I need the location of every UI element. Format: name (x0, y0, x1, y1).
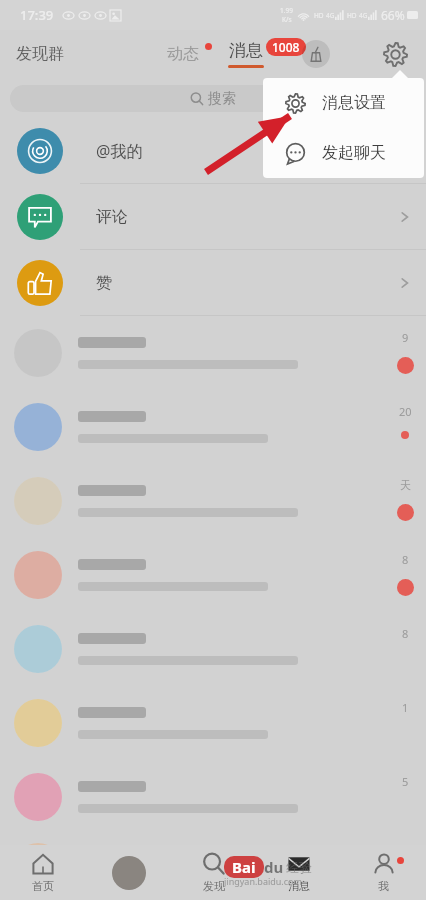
staticText: 8 (402, 552, 409, 567)
staticText: 1008 (272, 39, 300, 55)
staticText: 17:39 (20, 6, 54, 24)
button[interactable]: 消息 (228, 40, 264, 68)
staticText: jingyan.baidu.com (224, 875, 302, 887)
staticText: K/s (282, 15, 292, 24)
staticText: @我的 (96, 140, 143, 162)
staticText: 评论 (96, 207, 128, 227)
button[interactable]: 动态 (163, 40, 203, 68)
staticText: 首页 (32, 879, 54, 893)
button[interactable]: @我的 (0, 118, 426, 183)
button[interactable]: 1 (0, 686, 426, 760)
staticText: 经验 (286, 859, 312, 875)
staticText: 1.99 (280, 6, 293, 15)
button[interactable]: 消息 (256, 845, 341, 900)
staticText: 1 (402, 700, 409, 715)
staticText: 5 (402, 774, 409, 789)
button[interactable]: 发现 (171, 845, 256, 900)
button[interactable]: 发现群 (0, 36, 72, 72)
staticText: 8 (402, 848, 409, 863)
staticText: 4G (326, 11, 335, 20)
staticText: 4G (359, 11, 368, 20)
button[interactable]: 8 (0, 612, 426, 686)
button[interactable]: 首页 (0, 845, 86, 900)
staticText: Bai (232, 857, 256, 877)
staticText: 消息 (229, 40, 263, 61)
staticText: 发起聊天 (322, 143, 386, 163)
button[interactable]: Profile (86, 845, 171, 900)
button[interactable]: 天 (0, 464, 426, 538)
button[interactable]: 8 (0, 538, 426, 612)
staticText: 动态 (167, 44, 199, 64)
staticText: 66% (381, 7, 405, 23)
button[interactable]: 5 (0, 760, 426, 834)
button[interactable]: 发起聊天 (263, 128, 424, 178)
button[interactable]: 20 (0, 390, 426, 464)
button[interactable]: 我 (341, 845, 426, 900)
staticText: 天 (400, 478, 411, 492)
button[interactable]: Clear unread (302, 40, 330, 68)
button[interactable]: 搜索 (10, 85, 416, 112)
button[interactable]: Settings (378, 37, 412, 71)
staticText: 9 (402, 330, 409, 345)
staticText: 消息 (288, 879, 310, 893)
button[interactable]: 评论 (0, 184, 426, 249)
button[interactable]: 消息设置 (263, 78, 424, 128)
staticText: 20 (399, 404, 412, 419)
staticText: 赞 (96, 273, 112, 293)
staticText: 我 (378, 879, 389, 893)
staticText: HD (314, 11, 324, 20)
staticText: 发现 (203, 879, 225, 893)
button[interactable]: 赞 (0, 250, 426, 315)
button[interactable]: 8 (0, 834, 426, 900)
staticText: 发现群 (16, 44, 64, 64)
staticText: 搜索 (208, 90, 236, 108)
staticText: HD (347, 11, 357, 20)
staticText: du (264, 857, 284, 877)
button[interactable]: 9 (0, 316, 426, 390)
staticText: 8 (402, 626, 409, 641)
staticText: 消息设置 (322, 93, 386, 113)
